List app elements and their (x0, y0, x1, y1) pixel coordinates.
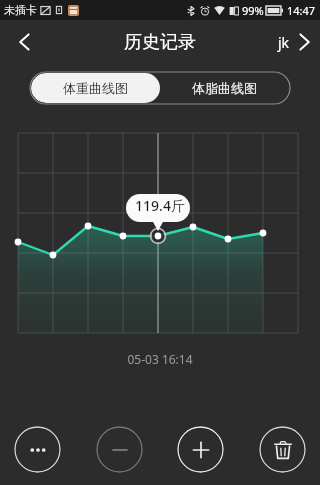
staticText: 体脂曲线图 (192, 80, 257, 96)
button[interactable]: 体重曲线图 (31, 73, 160, 103)
button[interactable]: 体脂曲线图 (160, 73, 289, 103)
button[interactable]: Delete (259, 426, 306, 473)
staticText: 99% (242, 3, 264, 18)
staticText: jk (278, 33, 290, 52)
button[interactable]: Decrease (96, 426, 143, 473)
staticText: 119.4斤 (135, 196, 185, 215)
button[interactable]: jk (278, 32, 314, 52)
staticText: 05-03 16:14 (0, 351, 320, 367)
staticText: 14:47 (287, 3, 316, 18)
button[interactable]: Increase (177, 426, 224, 473)
staticText: 未插卡 (4, 3, 37, 17)
button[interactable]: Back (8, 25, 42, 59)
staticText: 历史记录 (124, 31, 196, 54)
staticText: 体重曲线图 (63, 80, 128, 96)
button[interactable]: More (14, 426, 61, 473)
